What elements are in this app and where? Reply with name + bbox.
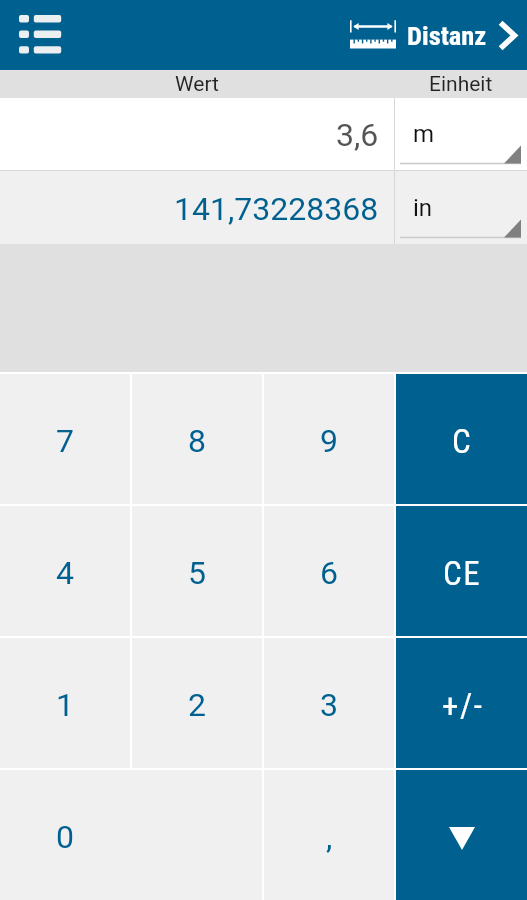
button[interactable]: 141,73228368 [0,171,394,244]
staticText: Distanz [407,20,487,51]
staticText: in [413,194,433,222]
staticText: , [326,818,333,856]
staticText: 3,6 [336,116,379,154]
button[interactable]: 3 [264,638,394,768]
button[interactable]: 4 [0,506,130,636]
button[interactable]: Hide keypad [396,770,527,900]
button[interactable]: 6 [264,506,394,636]
button[interactable]: +/- [396,638,527,768]
staticText: 141,73228368 [174,190,379,228]
button[interactable]: Categories [0,0,80,70]
staticText: 9 [320,422,338,460]
staticText: 3 [320,686,338,724]
button[interactable]: C [396,374,527,504]
button[interactable]: Distanz [350,0,527,70]
staticText: 6 [320,554,338,592]
staticText: m [413,120,435,148]
staticText: 2 [188,686,206,724]
button[interactable]: 0 [0,770,262,900]
staticText: C [452,422,473,461]
button[interactable]: Select unit [395,171,527,244]
staticText: 0 [56,818,74,856]
button[interactable]: Select unit [395,98,527,170]
staticText: Wert [175,72,219,97]
staticText: Einheit [429,72,493,97]
button[interactable]: 7 [0,374,130,504]
staticText: 5 [188,554,206,592]
staticText: 7 [56,422,74,460]
button[interactable]: 9 [264,374,394,504]
button[interactable]: 8 [132,374,262,504]
staticText: +/- [442,686,484,725]
button[interactable]: CE [396,506,527,636]
button[interactable]: 2 [132,638,262,768]
staticText: 1 [56,686,74,724]
button[interactable]: 1 [0,638,130,768]
button[interactable]: , [264,770,394,900]
staticText: CE [443,554,482,593]
button[interactable]: 3,6 [0,98,394,170]
staticText: 4 [56,554,74,592]
button[interactable]: 5 [132,506,262,636]
staticText: 8 [188,422,206,460]
